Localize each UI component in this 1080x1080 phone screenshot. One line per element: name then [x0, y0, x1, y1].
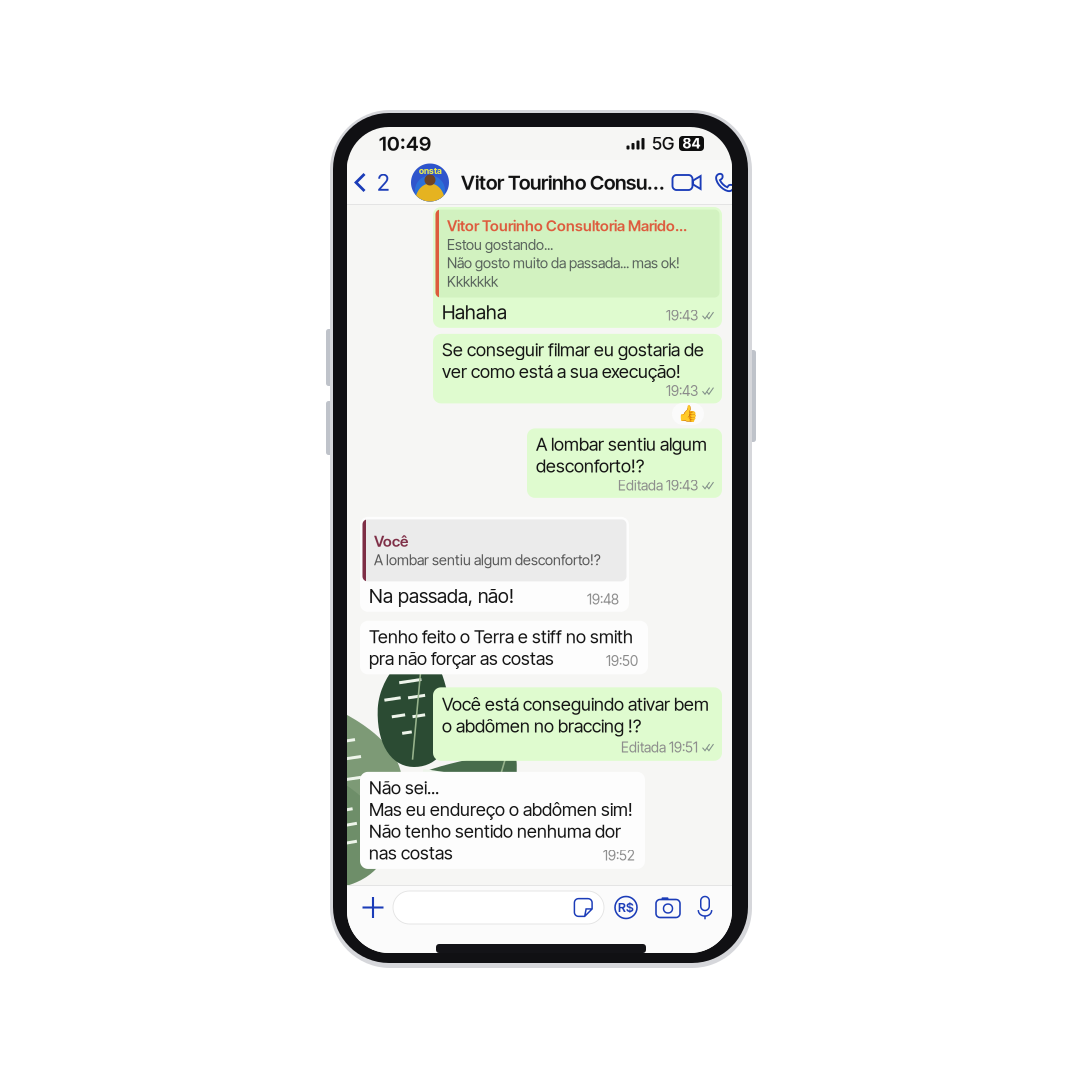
- staticText: Estou gostando...: [447, 236, 553, 253]
- staticText: 👍: [678, 404, 698, 423]
- staticText: 2: [377, 169, 390, 196]
- button[interactable]: Payments: [604, 887, 648, 927]
- staticText: 5G: [652, 133, 674, 154]
- staticText: Tenho feito o Terra e stiff no smith: [369, 626, 633, 648]
- staticText: 84: [682, 135, 700, 152]
- staticText: Editada 19:43: [618, 477, 698, 494]
- staticText: Vitor Tourinho Consu...: [461, 170, 665, 195]
- button[interactable]: Voice message: [688, 887, 722, 927]
- staticText: 10:49: [379, 131, 431, 156]
- staticText: R$: [618, 900, 634, 915]
- button[interactable]: Camera: [648, 887, 688, 927]
- staticText: Vitor Tourinho Consultoria Marido...: [447, 217, 687, 235]
- staticText: Mas eu endureço o abdômen sim!: [369, 799, 633, 820]
- button[interactable]: 2: [347, 160, 398, 204]
- staticText: pra não forçar as costas: [369, 648, 554, 669]
- staticText: Na passada, não!: [369, 584, 514, 608]
- staticText: Não tenho sentido nenhuma dor: [369, 820, 621, 842]
- staticText: Se conseguir filmar eu gostaria de: [442, 339, 704, 361]
- staticText: onsta: [419, 165, 442, 176]
- button[interactable]: Voice call: [707, 160, 743, 204]
- staticText: Editada 19:51: [621, 739, 698, 756]
- staticText: ver como está a sua execução!: [442, 361, 681, 382]
- staticText: Não gosto muito da passada... mas ok!: [447, 254, 680, 272]
- staticText: Você: [374, 532, 408, 550]
- button[interactable]: Attach: [353, 887, 393, 927]
- staticText: Não sei...: [369, 777, 439, 799]
- staticText: A lombar sentiu algum desconforto!?: [374, 551, 601, 569]
- staticText: nas costas: [369, 842, 453, 864]
- staticText: Kkkkkkk: [447, 273, 498, 290]
- staticText: A lombar sentiu algum: [536, 433, 707, 455]
- staticText: 19:43: [666, 307, 698, 324]
- button[interactable]: Video call: [667, 160, 707, 204]
- staticText: 19:52: [603, 847, 635, 864]
- staticText: Você está conseguindo ativar bem: [442, 693, 709, 715]
- staticText: 19:48: [587, 591, 619, 608]
- staticText: 19:50: [606, 652, 638, 669]
- staticText: 19:43: [666, 382, 698, 399]
- staticText: desconforto!?: [536, 455, 644, 477]
- staticText: Hahaha: [442, 300, 507, 324]
- staticText: o abdômen no braccing !?: [442, 715, 641, 737]
